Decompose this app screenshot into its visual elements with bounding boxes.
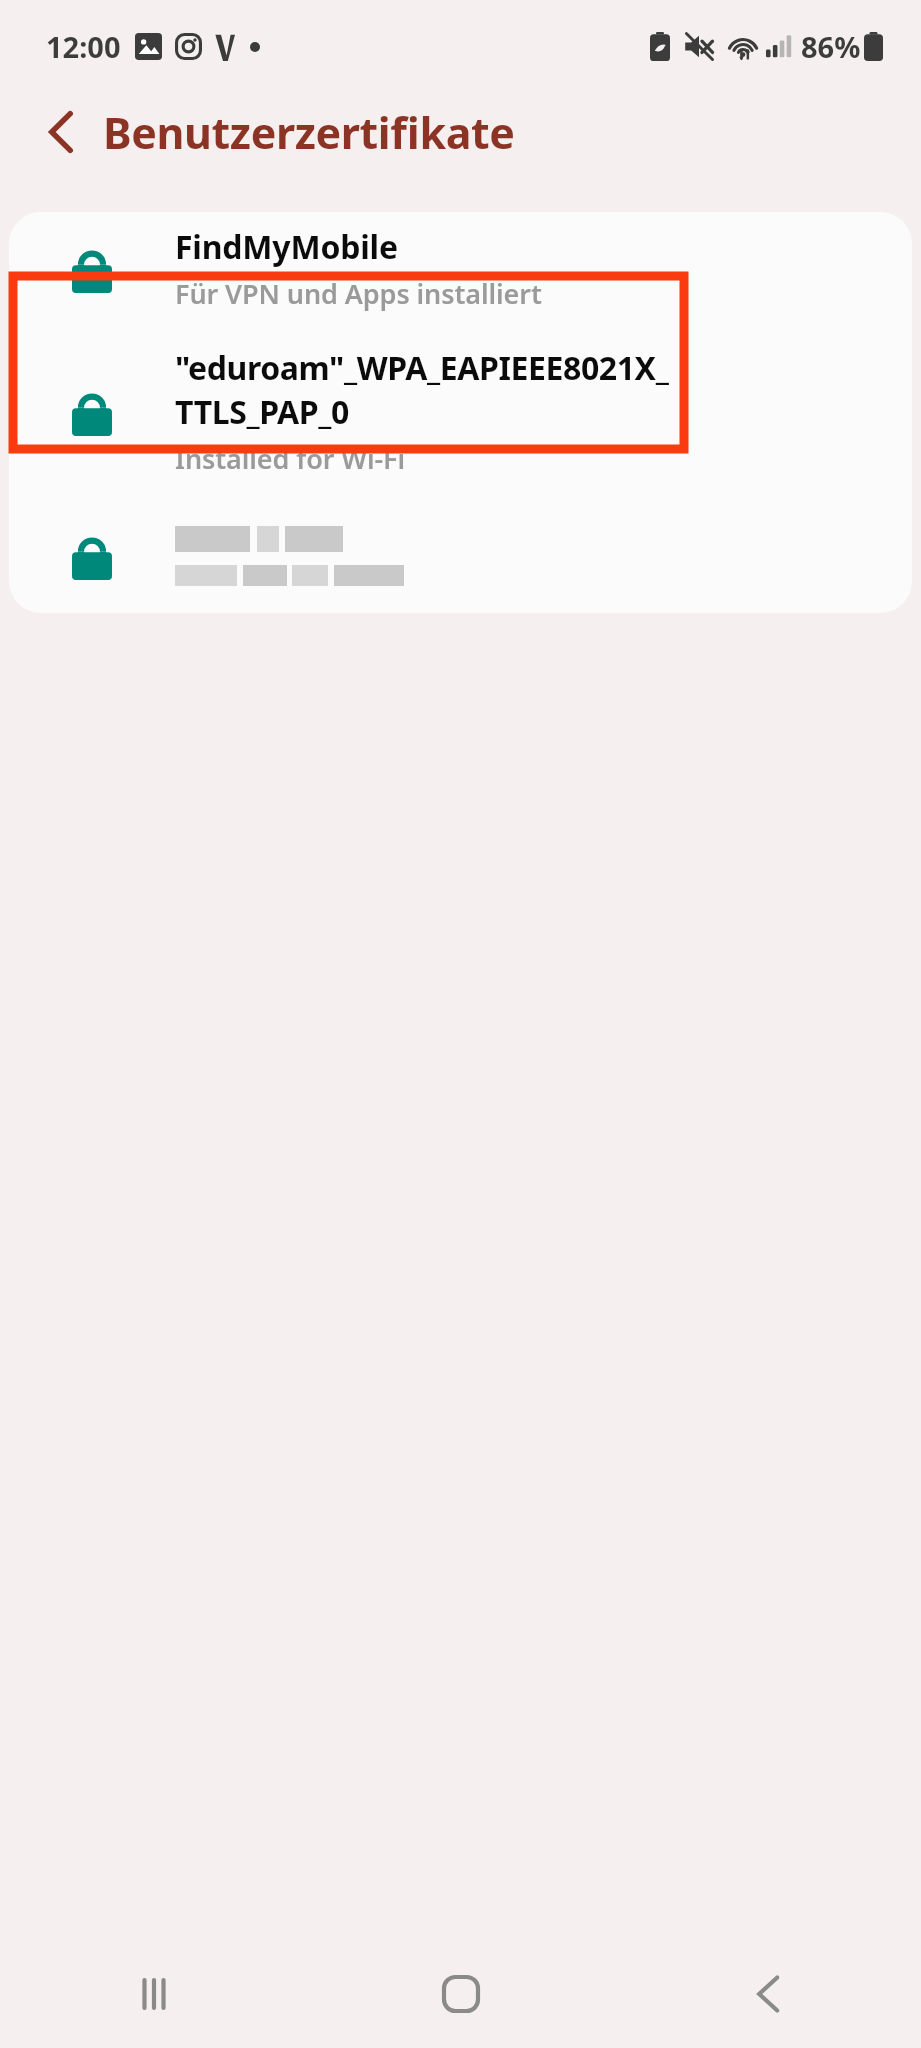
button[interactable]: Back (30, 101, 92, 163)
staticText: Für VPN und Apps installiert (175, 275, 542, 312)
staticText: 12:00 (46, 27, 121, 66)
button[interactable]: FindMyMobile (9, 212, 912, 325)
staticText: Installed for Wi-Fi (175, 440, 405, 477)
staticText: TTLS_PAP_0 (175, 390, 349, 434)
staticText: FindMyMobile (175, 225, 398, 269)
staticText: Benutzerzertifikate (103, 103, 515, 162)
staticText: "eduroam"_WPA_EAPIEEE8021X_ (175, 346, 669, 390)
button[interactable]: "eduroam"_WPA_EAPIEEE8021X_ (9, 325, 912, 498)
button[interactable]: Certificate entry (9, 498, 912, 613)
staticText: 86% (801, 27, 861, 66)
button[interactable]: Home (307, 1940, 614, 2048)
button[interactable]: Back (614, 1940, 921, 2048)
button[interactable]: Recent apps (0, 1940, 307, 2048)
